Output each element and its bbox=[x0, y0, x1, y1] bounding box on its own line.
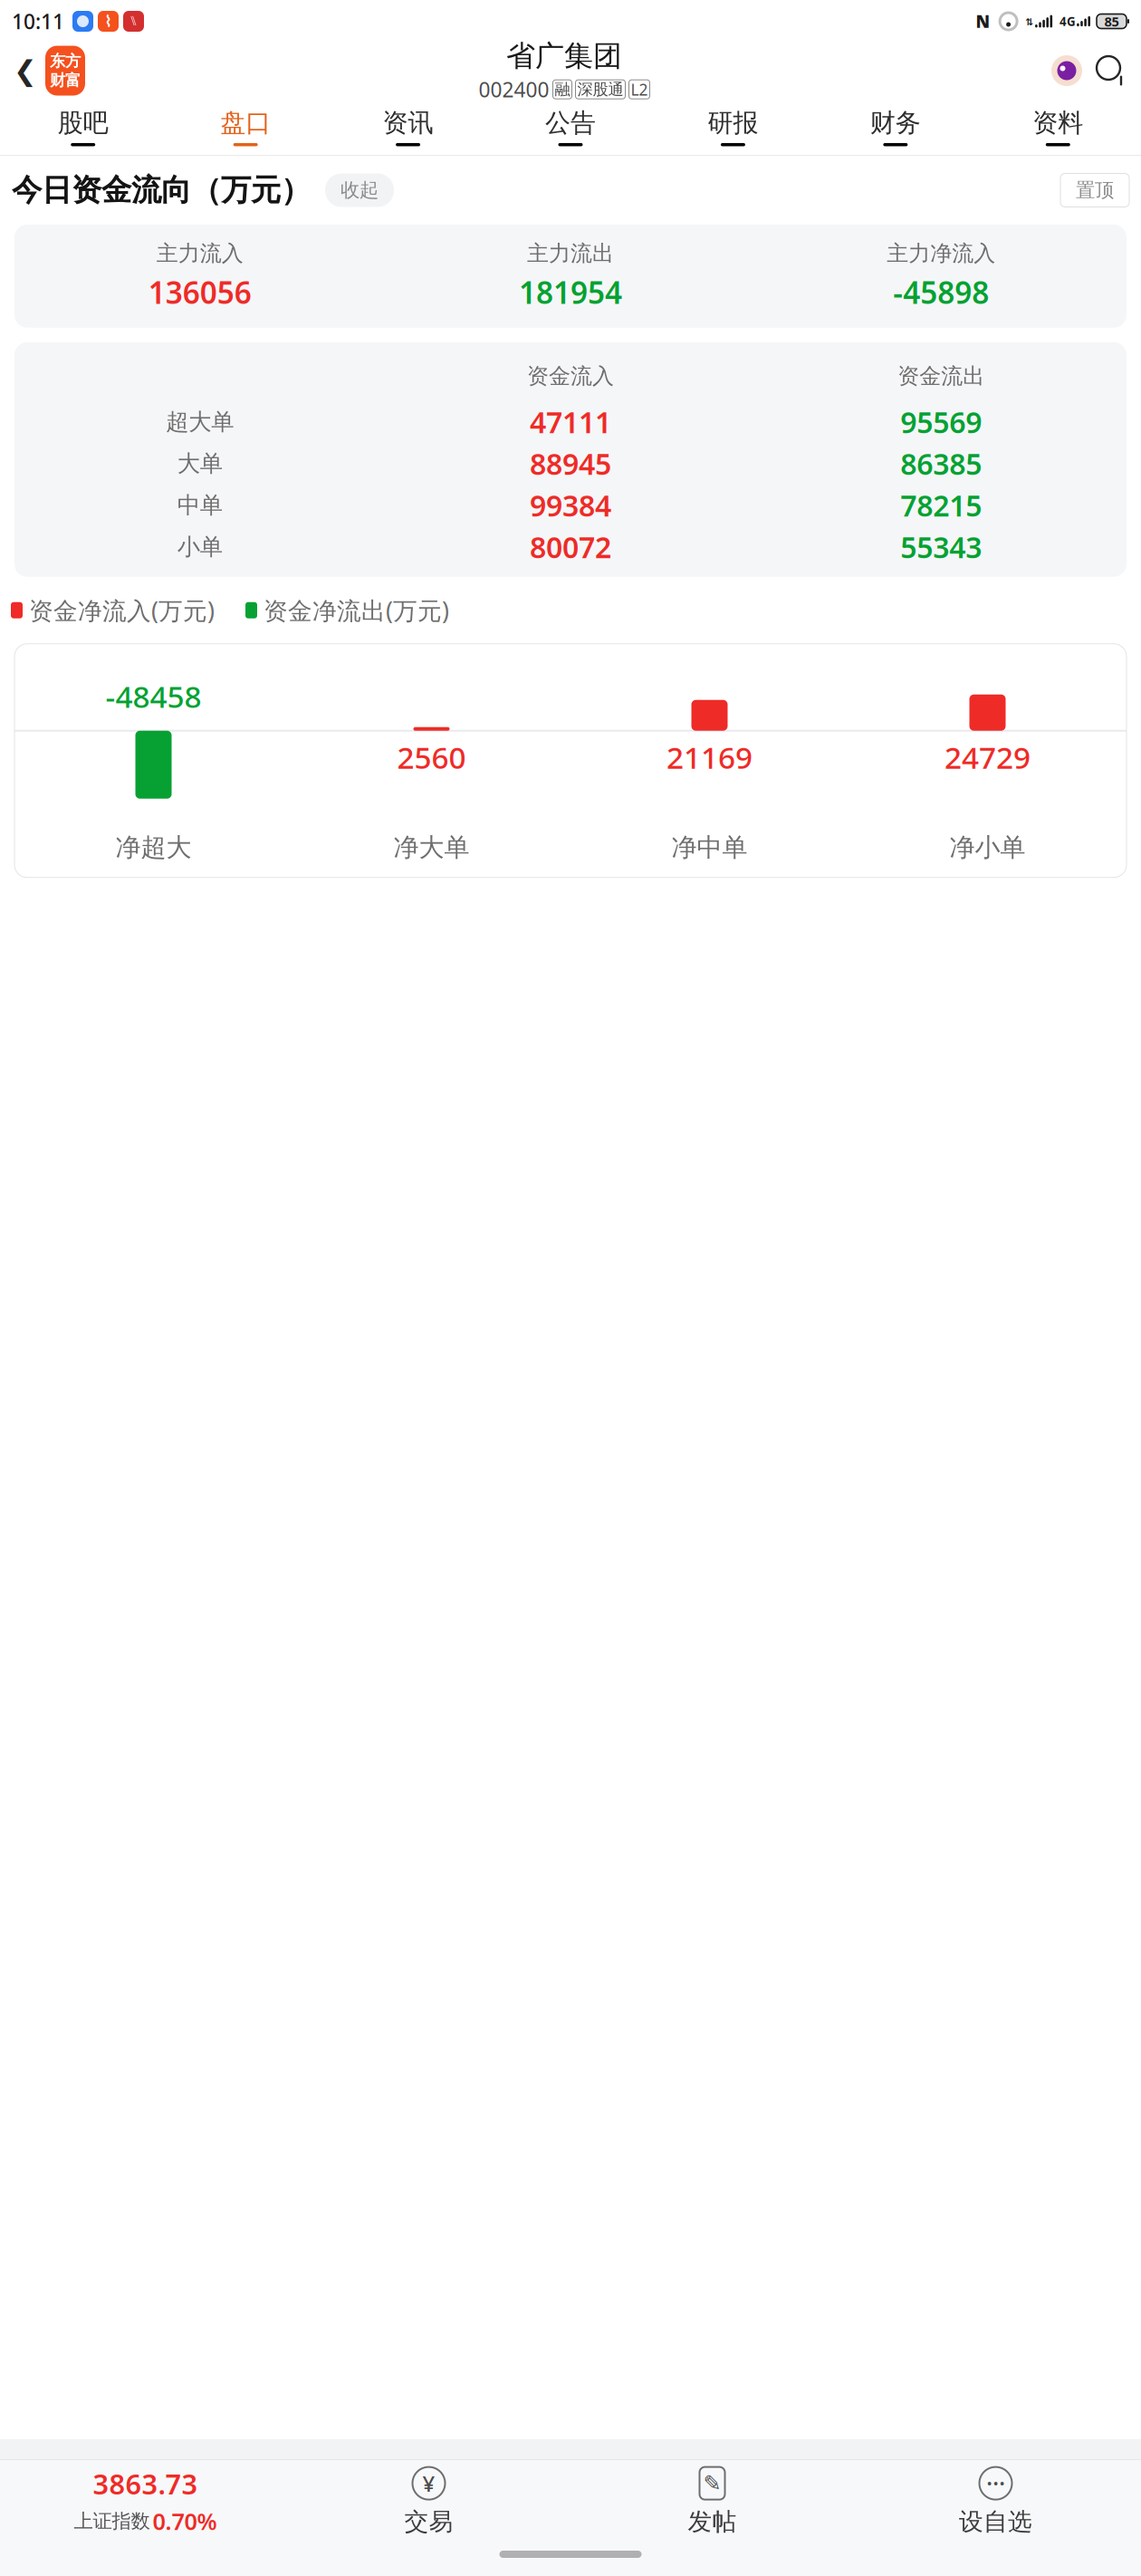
staticText: 融 bbox=[555, 80, 570, 99]
staticText: 002400 bbox=[479, 76, 549, 103]
staticText: 2560 bbox=[397, 737, 466, 777]
staticText: -48458 bbox=[105, 676, 201, 716]
staticText: 净小单 bbox=[949, 832, 1026, 863]
button[interactable]: 搜索 bbox=[1090, 50, 1132, 91]
staticText: 超大单 bbox=[166, 408, 234, 436]
staticText: 80072 bbox=[530, 528, 611, 566]
staticText: 55343 bbox=[900, 528, 982, 566]
staticText: 88945 bbox=[530, 444, 611, 483]
staticText: 置顶 bbox=[1076, 178, 1114, 202]
staticText: N bbox=[976, 10, 990, 33]
staticText: 省广集团 bbox=[506, 38, 622, 74]
button[interactable]: 智能助手 bbox=[1043, 47, 1090, 94]
staticText: 主力流出 bbox=[527, 240, 614, 267]
staticText: 99384 bbox=[530, 486, 611, 524]
button[interactable]: 3863.73 bbox=[4, 2460, 287, 2542]
staticText: 上证指数 bbox=[74, 2509, 150, 2533]
staticText: 东方 bbox=[50, 51, 81, 71]
staticText: 86385 bbox=[900, 444, 982, 483]
staticText: 研报 bbox=[708, 107, 758, 139]
staticText: 资金流入 bbox=[527, 363, 614, 389]
staticText: 资金流出 bbox=[898, 363, 985, 389]
staticText: 小单 bbox=[177, 533, 222, 561]
button[interactable]: 研报 bbox=[652, 99, 814, 155]
staticText: 21169 bbox=[666, 737, 753, 777]
staticText: 资料 bbox=[1033, 107, 1083, 139]
staticText: L2 bbox=[631, 79, 648, 100]
staticText: 大单 bbox=[177, 449, 222, 478]
staticText: 资讯 bbox=[383, 107, 433, 139]
staticText: -45898 bbox=[893, 272, 989, 312]
staticText: 主力净流入 bbox=[887, 240, 995, 267]
staticText: 财富 bbox=[50, 71, 81, 90]
staticText: 股吧 bbox=[58, 107, 108, 139]
staticText: 财务 bbox=[870, 107, 921, 139]
button[interactable]: 东方财富 bbox=[45, 46, 85, 96]
button[interactable]: ··· bbox=[854, 2460, 1137, 2542]
button[interactable]: 收起 bbox=[325, 173, 394, 207]
staticText: 4G bbox=[1060, 13, 1076, 29]
staticText: 181954 bbox=[519, 272, 622, 312]
staticText: ⑊ bbox=[129, 15, 138, 28]
staticText: 10:11 bbox=[12, 8, 64, 35]
staticText: 设自选 bbox=[959, 2507, 1032, 2537]
button[interactable]: 资料 bbox=[977, 99, 1139, 155]
staticText: 78215 bbox=[900, 486, 982, 524]
staticText: 95569 bbox=[900, 403, 982, 441]
button[interactable]: 盘口 bbox=[164, 99, 327, 155]
staticText: 136056 bbox=[148, 272, 251, 312]
staticText: 资金净流入(万元) bbox=[29, 594, 215, 626]
staticText: ··· bbox=[986, 2467, 1005, 2499]
staticText: 主力流入 bbox=[156, 240, 243, 267]
staticText: 85 bbox=[1104, 12, 1119, 30]
button[interactable]: 返回 bbox=[5, 51, 45, 91]
staticText: ✎ bbox=[703, 2471, 721, 2496]
staticText: ⌇ bbox=[105, 12, 112, 30]
button[interactable]: 公告 bbox=[489, 99, 652, 155]
staticText: 收起 bbox=[340, 178, 379, 202]
staticText: ¥ bbox=[422, 2469, 435, 2498]
button[interactable]: 置顶 bbox=[1060, 173, 1129, 207]
staticText: 24729 bbox=[944, 737, 1031, 777]
staticText: 深股通 bbox=[577, 80, 623, 99]
staticText: 今日资金流向（万元） bbox=[12, 172, 311, 209]
staticText: 净超大 bbox=[115, 832, 192, 863]
button[interactable]: 财务 bbox=[814, 99, 977, 155]
button[interactable]: 股吧 bbox=[2, 99, 164, 155]
staticText: 47111 bbox=[530, 403, 611, 441]
staticText: 资金净流出(万元) bbox=[264, 594, 449, 626]
button[interactable]: 资讯 bbox=[327, 99, 489, 155]
button[interactable]: ✎ bbox=[570, 2460, 854, 2542]
staticText: 交易 bbox=[404, 2507, 453, 2537]
staticText: 发帖 bbox=[688, 2507, 737, 2537]
button[interactable]: ¥ bbox=[287, 2460, 570, 2542]
staticText: 0.70% bbox=[153, 2506, 217, 2536]
staticText: 3863.73 bbox=[93, 2465, 198, 2502]
staticText: 公告 bbox=[545, 107, 596, 139]
staticText: 净中单 bbox=[671, 832, 748, 863]
staticText: ⇅ bbox=[1026, 17, 1034, 28]
staticText: 盘口 bbox=[220, 107, 271, 139]
staticText: 净大单 bbox=[393, 832, 470, 863]
staticText: 中单 bbox=[177, 491, 222, 519]
staticText: ❮ bbox=[14, 55, 37, 86]
